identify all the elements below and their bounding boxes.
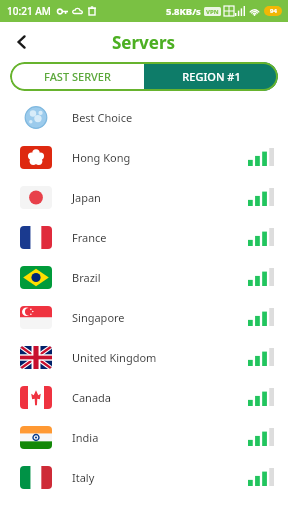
button[interactable]: Canada bbox=[0, 377, 288, 417]
staticText: India bbox=[72, 430, 99, 445]
staticText: Servers bbox=[112, 31, 176, 54]
staticText: Italy bbox=[72, 470, 95, 485]
button[interactable]: Italy bbox=[0, 457, 288, 497]
staticText: France bbox=[72, 230, 107, 245]
button[interactable]: FAST SERVER bbox=[10, 62, 144, 91]
button[interactable]: Brazil bbox=[0, 257, 288, 297]
button[interactable]: France bbox=[0, 217, 288, 257]
button[interactable]: Singapore bbox=[0, 297, 288, 337]
staticText: Best Choice bbox=[72, 110, 133, 125]
staticText: 5.8KB/s bbox=[166, 5, 201, 18]
staticText: Singapore bbox=[72, 310, 125, 325]
staticText: Canada bbox=[72, 390, 112, 405]
button[interactable]: India bbox=[0, 417, 288, 457]
button[interactable]: Best Choice bbox=[0, 97, 288, 137]
button[interactable]: United Kingdom bbox=[0, 337, 288, 377]
button[interactable]: REGION #1 bbox=[144, 62, 278, 91]
staticText: VPN bbox=[206, 8, 219, 16]
staticText: REGION #1 bbox=[182, 69, 241, 84]
staticText: 10:21 AM bbox=[7, 4, 51, 18]
button[interactable]: Hong Kong bbox=[0, 137, 288, 177]
staticText: 94 bbox=[270, 7, 277, 15]
staticText: United Kingdom bbox=[72, 350, 157, 365]
staticText: Japan bbox=[72, 190, 101, 205]
staticText: FAST SERVER bbox=[44, 69, 111, 84]
staticText: Brazil bbox=[72, 270, 101, 285]
button[interactable]: Japan bbox=[0, 177, 288, 217]
button[interactable]: Back bbox=[6, 26, 38, 58]
staticText: Hong Kong bbox=[72, 150, 131, 165]
